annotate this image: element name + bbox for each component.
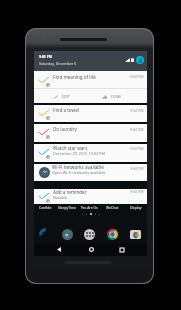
staticText: Watch star wars [53,145,88,151]
staticText: 9:05 PM [39,54,52,59]
staticText: WeChat [106,205,119,210]
staticText: DONE [111,94,122,99]
button[interactable]: Chrome [101,227,124,241]
button[interactable]: Home [84,243,98,256]
button[interactable]: Phone [34,227,56,241]
button[interactable]: Find meaning of life [34,71,147,103]
staticText: Notable [53,195,68,200]
staticText: Find a towel [53,107,79,113]
button[interactable]: Find a towel [34,105,147,122]
staticText: Find meaning of life [53,74,96,80]
other: Chrome [107,229,118,240]
staticText: Yes Are Us [81,205,98,210]
staticText: Display [130,205,142,210]
button[interactable]: All apps [78,227,101,241]
staticText: Open Wi-Fi networks available [52,170,106,175]
staticText: Wi-Fi networks available [52,164,104,170]
other: Phone [40,229,51,240]
button[interactable]: Do laundry [34,124,147,142]
staticText: SleepyTime [58,205,77,210]
staticText: Saturday, December 5 [39,61,77,66]
button[interactable]: Messages [56,227,78,241]
staticText: 9:03 PM [130,146,144,151]
button[interactable]: EDIT [53,93,71,100]
staticText: 9:04 PM [130,189,144,194]
button[interactable]: Wi-Fi networks available [34,164,147,181]
staticText: December 29, 2015 10:03 PM [53,151,105,156]
button[interactable]: Camera [124,227,147,241]
staticText: 9:04 PM [130,127,144,132]
staticText: EDIT [62,94,70,99]
button[interactable]: Recent apps [115,243,129,256]
other: All apps [84,229,95,240]
staticText: Add a reminder [53,189,87,195]
button[interactable]: Watch star wars [34,144,147,162]
button[interactable]: Add a reminder [34,189,147,204]
staticText: 9:04 PM [130,74,144,79]
button[interactable]: Back [52,243,66,256]
other: Messages [62,229,73,240]
staticText: Confide [39,205,52,210]
staticText: 9:04 PM [130,166,144,171]
staticText: Do laundry [53,126,77,132]
button[interactable]: DONE [102,93,123,100]
staticText: 9:04 PM [130,108,144,113]
other: Camera [130,229,141,240]
